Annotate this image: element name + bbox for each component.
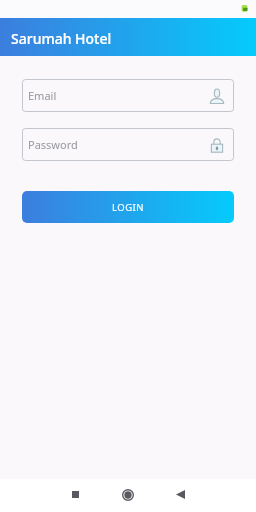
button[interactable]: LOGIN <box>22 191 234 223</box>
staticText: Sarumah Hotel <box>11 29 112 48</box>
button[interactable]: Back <box>155 479 207 512</box>
button[interactable]: Email <box>22 79 234 112</box>
staticText: LOGIN <box>112 201 145 214</box>
staticText: Password <box>28 137 78 152</box>
button[interactable]: Recent apps <box>49 479 101 512</box>
button[interactable]: Password <box>22 128 234 161</box>
staticText: Email <box>28 88 57 103</box>
button[interactable]: Home <box>102 479 154 512</box>
